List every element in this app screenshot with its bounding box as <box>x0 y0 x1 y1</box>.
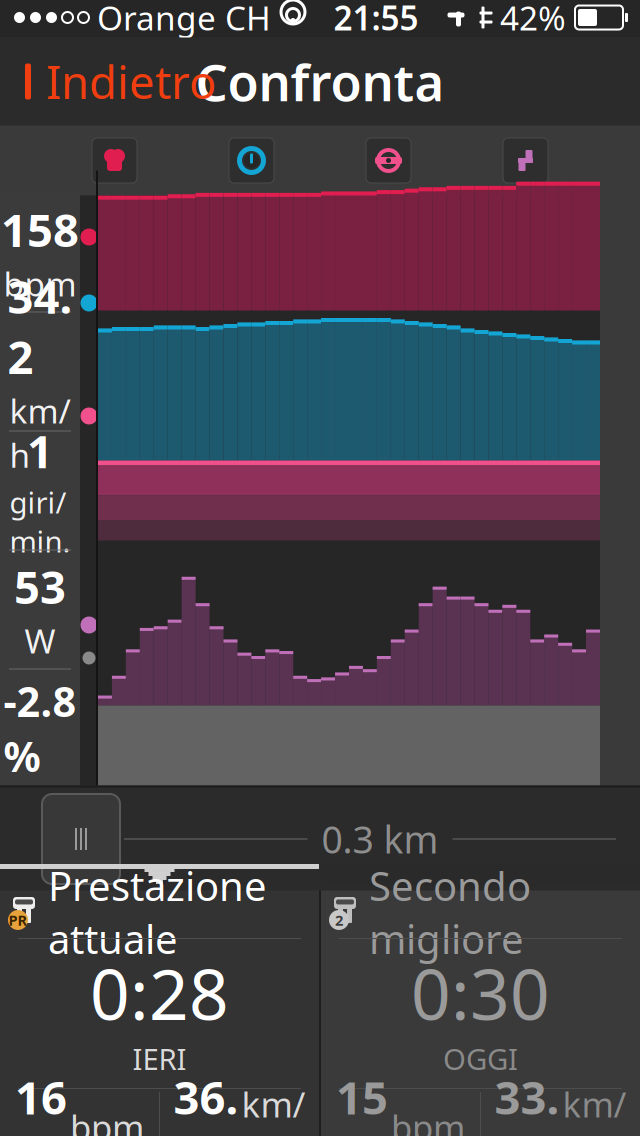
staticText: km/h <box>9 388 70 477</box>
staticText: W <box>24 618 55 663</box>
staticText: 53 <box>14 556 66 616</box>
button[interactable]: Velocità <box>229 138 274 183</box>
staticText: 42% <box>500 0 566 40</box>
staticText: 0:30 <box>411 947 550 1039</box>
staticText: giri/min. <box>9 483 70 560</box>
staticText: 21:55 <box>333 0 418 40</box>
staticText: Orange CH <box>97 0 271 40</box>
staticText: 158 <box>1 199 79 259</box>
staticText: 34.2 <box>7 266 72 386</box>
staticText: 1 <box>27 420 53 481</box>
staticText: Secondo migliore <box>369 859 531 965</box>
staticText: 36.3 <box>173 1067 238 1136</box>
staticText: km/h <box>562 1081 626 1136</box>
button[interactable]: Indietro <box>0 41 216 122</box>
staticText: 0.3 km <box>321 814 438 864</box>
staticText: 0:28 <box>90 947 229 1039</box>
staticText: bpm <box>70 1104 144 1136</box>
staticText: Confronta <box>195 48 444 115</box>
staticText: Prestazione attuale <box>48 859 267 965</box>
button[interactable]: Cadenza <box>366 138 411 183</box>
button[interactable]: Frequenza cardiaca <box>92 138 137 183</box>
staticText: 2 <box>335 910 343 930</box>
button[interactable]: Potenza <box>503 138 548 183</box>
staticText: 158 <box>336 1067 388 1136</box>
staticText: PR <box>8 910 27 930</box>
button[interactable]: 2 <box>321 890 640 1136</box>
button[interactable]: PR <box>0 890 319 1136</box>
button[interactable]: Intervallo <box>42 794 120 884</box>
staticText: -2.8% <box>3 674 76 783</box>
staticText: 33.9 <box>494 1067 559 1136</box>
staticText: 161 <box>15 1067 67 1136</box>
staticText: bpm <box>391 1104 465 1136</box>
staticText: bpm <box>3 261 76 306</box>
staticText: IERI <box>132 1039 186 1078</box>
staticText: km/h <box>241 1081 305 1136</box>
staticText: OGGI <box>443 1039 518 1078</box>
staticText: Indietro <box>46 51 216 112</box>
